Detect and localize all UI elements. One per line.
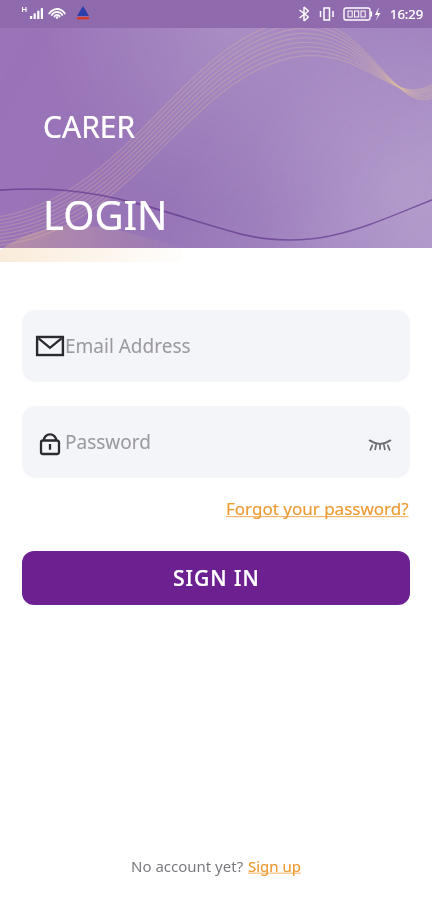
button[interactable]: Password [22,406,410,478]
button[interactable]: Show password [362,424,398,460]
staticText: Password [65,429,151,455]
staticText: CARER [43,106,136,147]
staticText: Email Address [65,333,191,359]
staticText: LOGIN [43,187,168,241]
button[interactable]: Email Address [22,310,410,382]
staticText: 16:29 [390,5,424,23]
staticText: No account yet? [131,856,248,876]
button[interactable]: SIGN IN [22,551,410,605]
button[interactable]: Sign up [248,856,301,876]
staticText: SIGN IN [173,564,260,593]
button[interactable]: Forgot your password? [223,494,412,523]
